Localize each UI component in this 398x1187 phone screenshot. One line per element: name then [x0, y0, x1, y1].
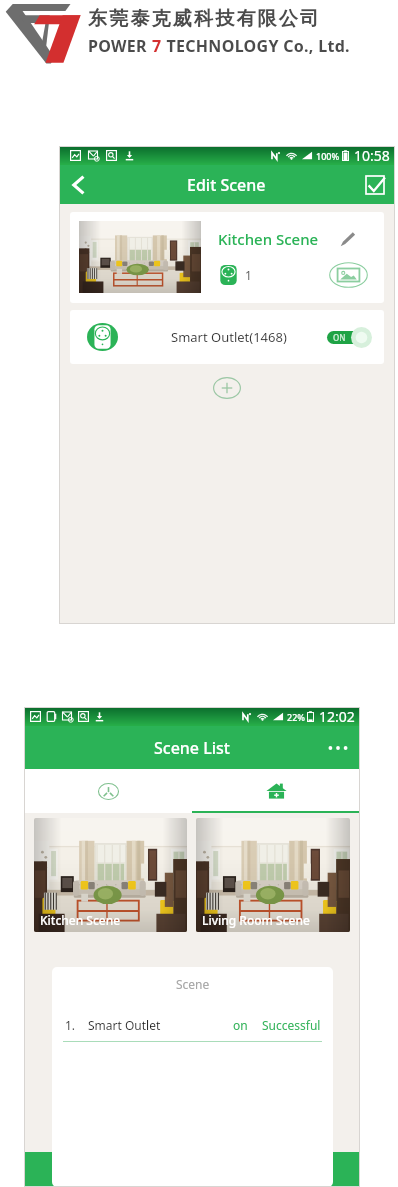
staticText: POWER	[88, 35, 152, 57]
staticText: Scene	[176, 976, 210, 992]
staticText: 1	[245, 267, 252, 283]
button[interactable]: Back	[59, 165, 97, 204]
button[interactable]: Add device	[213, 377, 241, 399]
staticText: Smart Outlet	[88, 1017, 161, 1033]
staticText: Kitchen Scene	[40, 912, 121, 928]
staticText: Scene List	[154, 737, 230, 759]
button[interactable]: Confirm	[355, 165, 395, 204]
staticText: on	[233, 1017, 248, 1033]
button[interactable]: More options	[316, 726, 360, 769]
staticText: TECHNOLOGY Co., Ltd.	[162, 35, 350, 57]
staticText: 100%	[316, 150, 340, 162]
button[interactable]: Kitchen Scene	[34, 818, 187, 932]
staticText: 7	[152, 35, 162, 57]
staticText: ON	[333, 332, 346, 343]
button[interactable]: Edit name	[338, 230, 357, 249]
staticText: 东莞泰克威科技有限公司	[88, 7, 322, 31]
button[interactable]: Devices tab	[24, 769, 192, 813]
staticText: Living Room Scene	[202, 912, 310, 928]
button[interactable]: Living Room Scene	[196, 818, 350, 932]
button[interactable]: Toggle on	[327, 327, 372, 348]
staticText: 10:58	[354, 146, 390, 165]
button[interactable]: Scenes tab	[192, 769, 360, 813]
staticText: Edit Scene	[187, 174, 266, 196]
button[interactable]: Change image	[329, 262, 368, 288]
staticText: Kitchen Scene	[218, 229, 319, 249]
button[interactable]: Smart Outlet(1468)	[70, 310, 384, 364]
staticText: 1.	[65, 1017, 76, 1033]
staticText: Smart Outlet(1468)	[171, 328, 287, 346]
staticText: 12:02	[319, 707, 355, 726]
staticText: 22%	[287, 711, 305, 723]
staticText: Successful	[262, 1017, 321, 1033]
button[interactable]: Kitchen Scene	[70, 212, 384, 303]
button[interactable]: Settings	[192, 1152, 360, 1187]
button[interactable]: Timer	[24, 1152, 192, 1187]
